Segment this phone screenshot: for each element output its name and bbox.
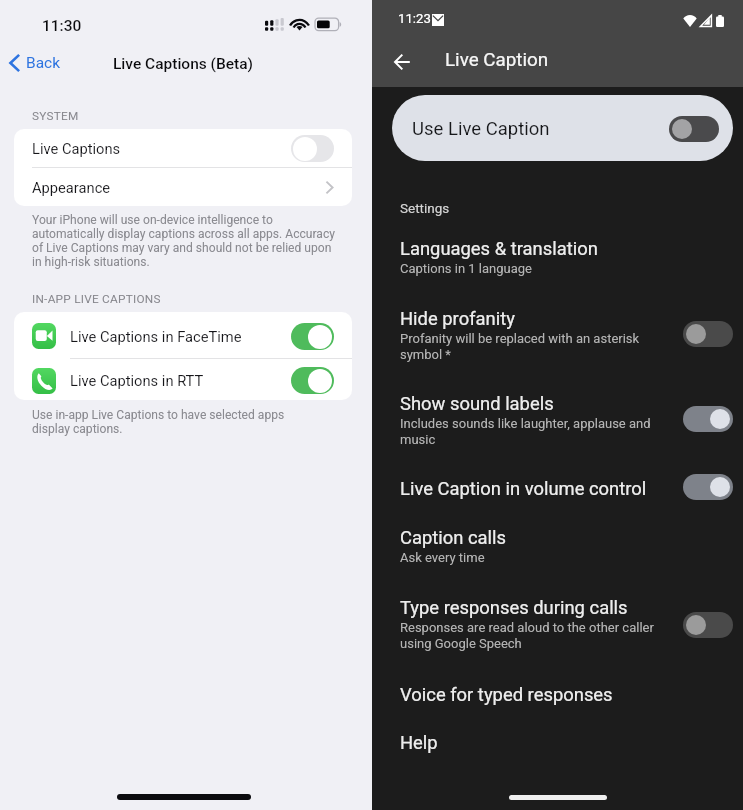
button[interactable]: Switch off [683, 612, 733, 638]
staticText: Profanity will be replaced with an aster… [400, 330, 640, 362]
button[interactable]: Live Captions [14, 129, 352, 167]
staticText: Live Captions [32, 140, 121, 157]
staticText: Show sound labels [400, 392, 554, 415]
staticText: Type responses during calls [400, 596, 628, 619]
staticText: Captions in 1 language [400, 260, 533, 276]
button[interactable]: Live Captions in FaceTime [14, 314, 352, 358]
staticText: Help [400, 731, 438, 754]
button[interactable]: Switch on [683, 406, 733, 432]
staticText: Live Captions in RTT [70, 372, 204, 389]
staticText: Includes sounds like laughter, applause … [400, 415, 651, 447]
button[interactable] [372, 526, 743, 568]
staticText: IN-APP LIVE CAPTIONS [32, 292, 161, 306]
button[interactable] [372, 307, 743, 365]
button[interactable] [372, 683, 743, 709]
staticText: Live Caption in volume control [400, 477, 647, 500]
staticText: 11:23 [398, 11, 431, 26]
staticText: 11:30 [42, 17, 82, 35]
staticText: Use Live Caption [412, 118, 550, 140]
button[interactable]: Switch off [683, 321, 733, 347]
staticText: SYSTEM [32, 109, 79, 123]
staticText: Your iPhone will use on-device intellige… [32, 213, 335, 269]
staticText: Caption calls [400, 526, 507, 549]
button[interactable] [372, 392, 743, 450]
button[interactable]: Appearance [14, 168, 352, 206]
button[interactable]: Live Captions in RTT [14, 359, 352, 400]
button[interactable] [372, 596, 743, 654]
staticText: Live Caption [445, 49, 549, 71]
button[interactable] [372, 731, 743, 757]
staticText: Responses are read aloud to the other ca… [400, 619, 654, 651]
staticText: Voice for typed responses [400, 683, 613, 706]
button[interactable] [372, 237, 743, 279]
button[interactable]: Switch off [669, 116, 719, 142]
staticText: Live Captions in FaceTime [70, 328, 242, 345]
button[interactable]: Back [7, 51, 63, 75]
staticText: Hide profanity [400, 307, 515, 330]
staticText: Appearance [32, 179, 111, 196]
staticText: Settings [400, 200, 450, 216]
button[interactable]: Back [378, 43, 414, 79]
button[interactable]: Toggle off [291, 135, 334, 162]
staticText: Use in-app Live Captions to have selecte… [32, 408, 285, 436]
button[interactable]: Switch on [683, 474, 733, 500]
staticText: Languages & translation [400, 237, 598, 260]
staticText: Back [26, 54, 61, 72]
button[interactable]: Toggle on [291, 323, 334, 350]
button[interactable]: Toggle on [291, 367, 334, 394]
button[interactable] [372, 477, 743, 503]
button[interactable]: Use Live Caption [392, 95, 733, 161]
staticText: Live Captions (Beta) [113, 55, 254, 73]
staticText: Ask every time [400, 549, 485, 565]
